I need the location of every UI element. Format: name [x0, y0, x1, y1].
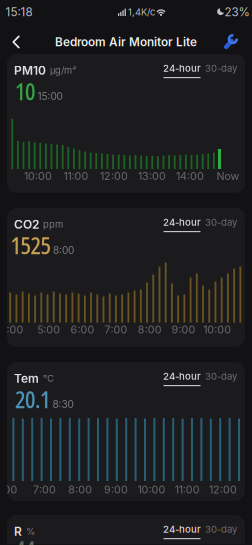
- button[interactable]: 24-hour: [163, 370, 201, 386]
- staticText: 7:00: [33, 483, 56, 496]
- button[interactable]: 24-hour: [163, 524, 201, 539]
- staticText: Now: [216, 169, 239, 182]
- button[interactable]: 30-day: [201, 370, 237, 386]
- staticText: CO2: [14, 217, 39, 231]
- button[interactable]: 30-day: [201, 62, 237, 78]
- button[interactable]: 30-day: [201, 216, 237, 232]
- staticText: 10:00: [24, 169, 52, 182]
- staticText: %: [26, 526, 35, 537]
- button[interactable]: 30-day: [201, 524, 237, 539]
- staticText: 20.1: [15, 384, 50, 415]
- button[interactable]: Settings: [218, 29, 242, 54]
- staticText: 9:00: [104, 483, 128, 496]
- button[interactable]: Back: [6, 29, 26, 54]
- staticText: Bedroom Air Monitor Lite: [55, 35, 197, 49]
- staticText: 5:00: [37, 323, 60, 336]
- staticText: 6:00: [70, 323, 94, 336]
- staticText: 8:30: [52, 398, 73, 410]
- staticText: R: [14, 524, 22, 539]
- staticText: Tem: [14, 371, 39, 385]
- staticText: μg/m³: [50, 65, 76, 76]
- staticText: 8:00: [68, 483, 92, 496]
- staticText: 15:18: [5, 5, 32, 19]
- staticText: 1525: [10, 230, 50, 261]
- staticText: 30-day: [205, 216, 237, 228]
- staticText: 23%: [224, 5, 249, 19]
- staticText: 10:00: [203, 323, 231, 336]
- staticText: ℃: [43, 373, 54, 384]
- staticText: 30-day: [205, 370, 237, 382]
- staticText: 24-hour: [163, 524, 201, 535]
- staticText: 9:00: [171, 323, 195, 336]
- staticText: 24-hour: [163, 62, 201, 74]
- staticText: 11:00: [63, 169, 88, 182]
- staticText: 8:00: [53, 244, 74, 256]
- button[interactable]: 24-hour: [163, 62, 201, 78]
- staticText: 11:00: [175, 483, 200, 496]
- staticText: :00: [0, 483, 17, 496]
- staticText: 24-hour: [163, 216, 201, 228]
- staticText: 30-day: [205, 62, 237, 74]
- staticText: 30-day: [205, 524, 237, 535]
- staticText: 13:00: [138, 169, 166, 182]
- staticText: ppm: [43, 219, 63, 230]
- staticText: 10:00: [138, 483, 166, 496]
- button[interactable]: 24-hour: [163, 216, 201, 232]
- staticText: 12:00: [209, 483, 237, 496]
- staticText: 12:00: [100, 169, 128, 182]
- staticText: 1,4K/c: [128, 6, 155, 18]
- staticText: 7:00: [105, 323, 128, 336]
- staticText: 44: [15, 534, 35, 545]
- staticText: 24-hour: [163, 370, 201, 382]
- staticText: 8:00: [138, 323, 162, 336]
- staticText: PM10: [14, 63, 46, 77]
- staticText: 10: [15, 76, 35, 107]
- staticText: 14:00: [176, 169, 204, 182]
- staticText: :00: [6, 323, 23, 336]
- staticText: 15:00: [37, 90, 62, 102]
